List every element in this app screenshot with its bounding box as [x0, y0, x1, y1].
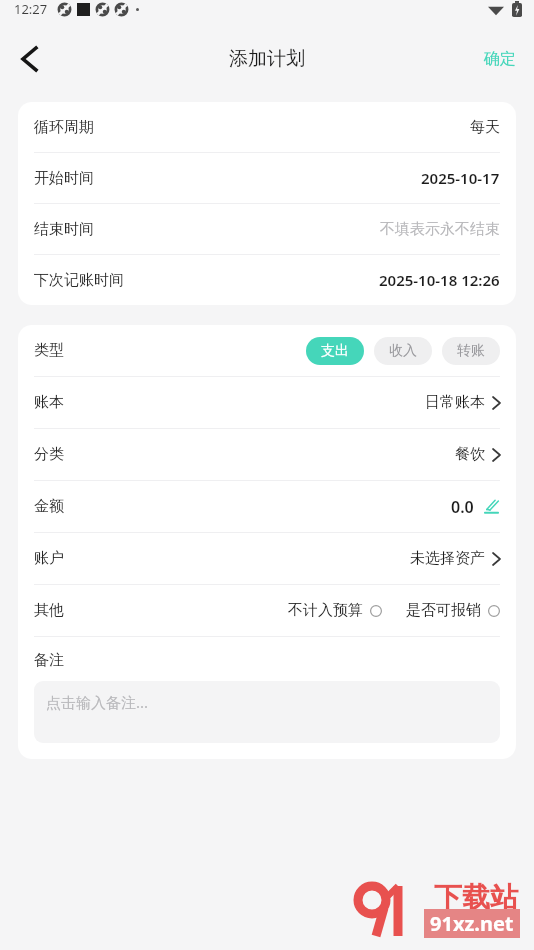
button[interactable]: 收入 — [374, 337, 432, 365]
staticText: 支出 — [321, 342, 349, 360]
button[interactable]: 不计入预算 — [288, 601, 382, 620]
staticText: 确定 — [484, 49, 516, 69]
button[interactable]: 下次记账时间 — [34, 255, 500, 305]
button[interactable]: 分类 — [34, 429, 500, 480]
staticText: 结束时间 — [34, 220, 94, 239]
staticText: 未选择资产 — [410, 549, 485, 568]
staticText: 餐饮 — [455, 445, 485, 464]
button[interactable]: 账本 — [34, 377, 500, 428]
staticText: 转账 — [457, 342, 485, 360]
staticText: 账户 — [34, 549, 64, 568]
staticText: 日常账本 — [425, 393, 485, 412]
button[interactable]: 是否可报销 — [406, 601, 500, 620]
staticText: 账本 — [34, 393, 64, 412]
button[interactable]: Back — [6, 36, 52, 82]
staticText: 点击输入备注... — [46, 692, 149, 712]
staticText: 下载站 — [434, 880, 518, 915]
button[interactable]: 结束时间 — [34, 204, 500, 254]
other: Edit amount — [483, 498, 500, 515]
staticText: 分类 — [34, 445, 64, 464]
button[interactable]: 循环周期 — [34, 102, 500, 152]
staticText: 下次记账时间 — [34, 271, 124, 290]
button[interactable]: 账户 — [34, 533, 500, 584]
button[interactable]: 转账 — [442, 337, 500, 365]
button[interactable]: 金额 — [34, 481, 500, 532]
staticText: 备注 — [34, 651, 64, 670]
staticText: 类型 — [34, 341, 64, 360]
staticText: 每天 — [470, 118, 500, 137]
button[interactable]: 点击输入备注... — [34, 681, 500, 743]
staticText: 收入 — [389, 342, 417, 360]
staticText: 2025-10-18 12:26 — [379, 270, 500, 290]
staticText: 2025-10-17 — [421, 168, 500, 188]
staticText: 91xz.net — [430, 910, 514, 937]
button[interactable]: 支出 — [306, 337, 364, 365]
staticText: 12:27 — [14, 0, 48, 18]
button[interactable]: 开始时间 — [34, 153, 500, 203]
staticText: 不填表示永不结束 — [380, 220, 500, 239]
staticText: 不计入预算 — [288, 601, 363, 620]
staticText: 金额 — [34, 497, 64, 516]
button[interactable]: 确定 — [466, 37, 534, 81]
staticText: 循环周期 — [34, 118, 94, 137]
staticText: 0.0 — [451, 496, 474, 518]
staticText: 添加计划 — [229, 47, 305, 71]
staticText: 是否可报销 — [406, 601, 481, 620]
staticText: 开始时间 — [34, 169, 94, 188]
staticText: 其他 — [34, 601, 64, 620]
